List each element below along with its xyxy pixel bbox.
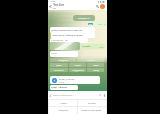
button[interactable]: Voice message <box>102 91 107 99</box>
staticText: Поддержка <box>72 69 84 72</box>
staticText: link <box>89 23 92 25</box>
staticText: Продукты <box>58 59 68 62</box>
staticText: Назад <box>93 69 99 72</box>
button[interactable]: Заказ <box>87 63 104 67</box>
button[interactable]: Каталог <box>78 100 106 106</box>
button[interactable]: link <box>87 21 107 27</box>
staticText: Ответ, 2 файла <box>51 86 67 89</box>
staticText: Отчет_570.xlsx <box>59 78 75 81</box>
staticText: Выберите пункт <box>51 55 67 56</box>
staticText: Каталог <box>88 102 96 105</box>
staticText: Добро пожаловать в наш чат! <box>51 29 83 32</box>
button[interactable]: Назад <box>87 68 104 72</box>
staticText: Спасибо <box>82 45 91 48</box>
button[interactable] <box>50 42 80 50</box>
staticText: Каталог <box>87 59 95 62</box>
staticText: Чат-бот <box>53 3 65 7</box>
staticText: бот <box>53 7 57 9</box>
button[interactable]: Спасибо <box>81 44 105 49</box>
staticText: 23 KB <box>59 81 64 83</box>
button[interactable]: Продукты <box>50 58 76 62</box>
button[interactable]: Profile <box>100 4 105 9</box>
staticText: Акции <box>74 64 81 67</box>
staticText: Пожалуйста, выберите раздел: <box>52 34 84 37</box>
staticText: Продукты для дома... <box>81 109 103 112</box>
button[interactable]: Пожалуйста, выберите раздел: <box>50 33 95 38</box>
staticText: Меню <box>51 52 57 55</box>
button[interactable]: Search <box>95 3 100 9</box>
button[interactable]: Продукты для дома... <box>78 107 106 114</box>
staticText: Заказ <box>93 64 99 67</box>
staticText: Сегодня 12 <box>78 17 90 20</box>
button[interactable]: Ответ, 2 файла <box>50 85 78 90</box>
button[interactable]: Каталог <box>77 58 104 62</box>
button[interactable]: Меню <box>49 100 77 106</box>
button[interactable]: Поддержка <box>69 68 86 72</box>
button[interactable]: Контакты <box>50 68 68 72</box>
staticText: с доставкой <box>51 39 64 42</box>
button[interactable]: Back <box>48 3 53 9</box>
button[interactable]: Attach file <box>48 91 53 99</box>
button[interactable]: Отчет_570.xlsx <box>52 76 98 84</box>
button[interactable]: Цены <box>50 63 68 67</box>
staticText: Меню <box>60 102 67 105</box>
staticText: Ваше сообщение... <box>53 94 75 97</box>
staticText: Контакты <box>54 69 64 72</box>
button[interactable]: Акции <box>69 63 86 67</box>
staticText: 12:14 <box>98 23 103 25</box>
staticText: 12:16 <box>99 46 104 48</box>
button[interactable]: Expand <box>97 91 102 99</box>
button[interactable]: Добро пожаловать в наш чат! <box>50 27 95 33</box>
staticText: Продукты <box>58 109 69 112</box>
button[interactable]: Меню <box>51 52 77 56</box>
button[interactable]: Сегодня 12 <box>73 15 95 21</box>
button[interactable]: с доставкой <box>50 38 88 43</box>
button[interactable]: Продукты <box>49 107 77 114</box>
staticText: тут <box>65 39 69 42</box>
staticText: 14:28 <box>50 0 56 3</box>
staticText: Цены <box>56 64 62 67</box>
